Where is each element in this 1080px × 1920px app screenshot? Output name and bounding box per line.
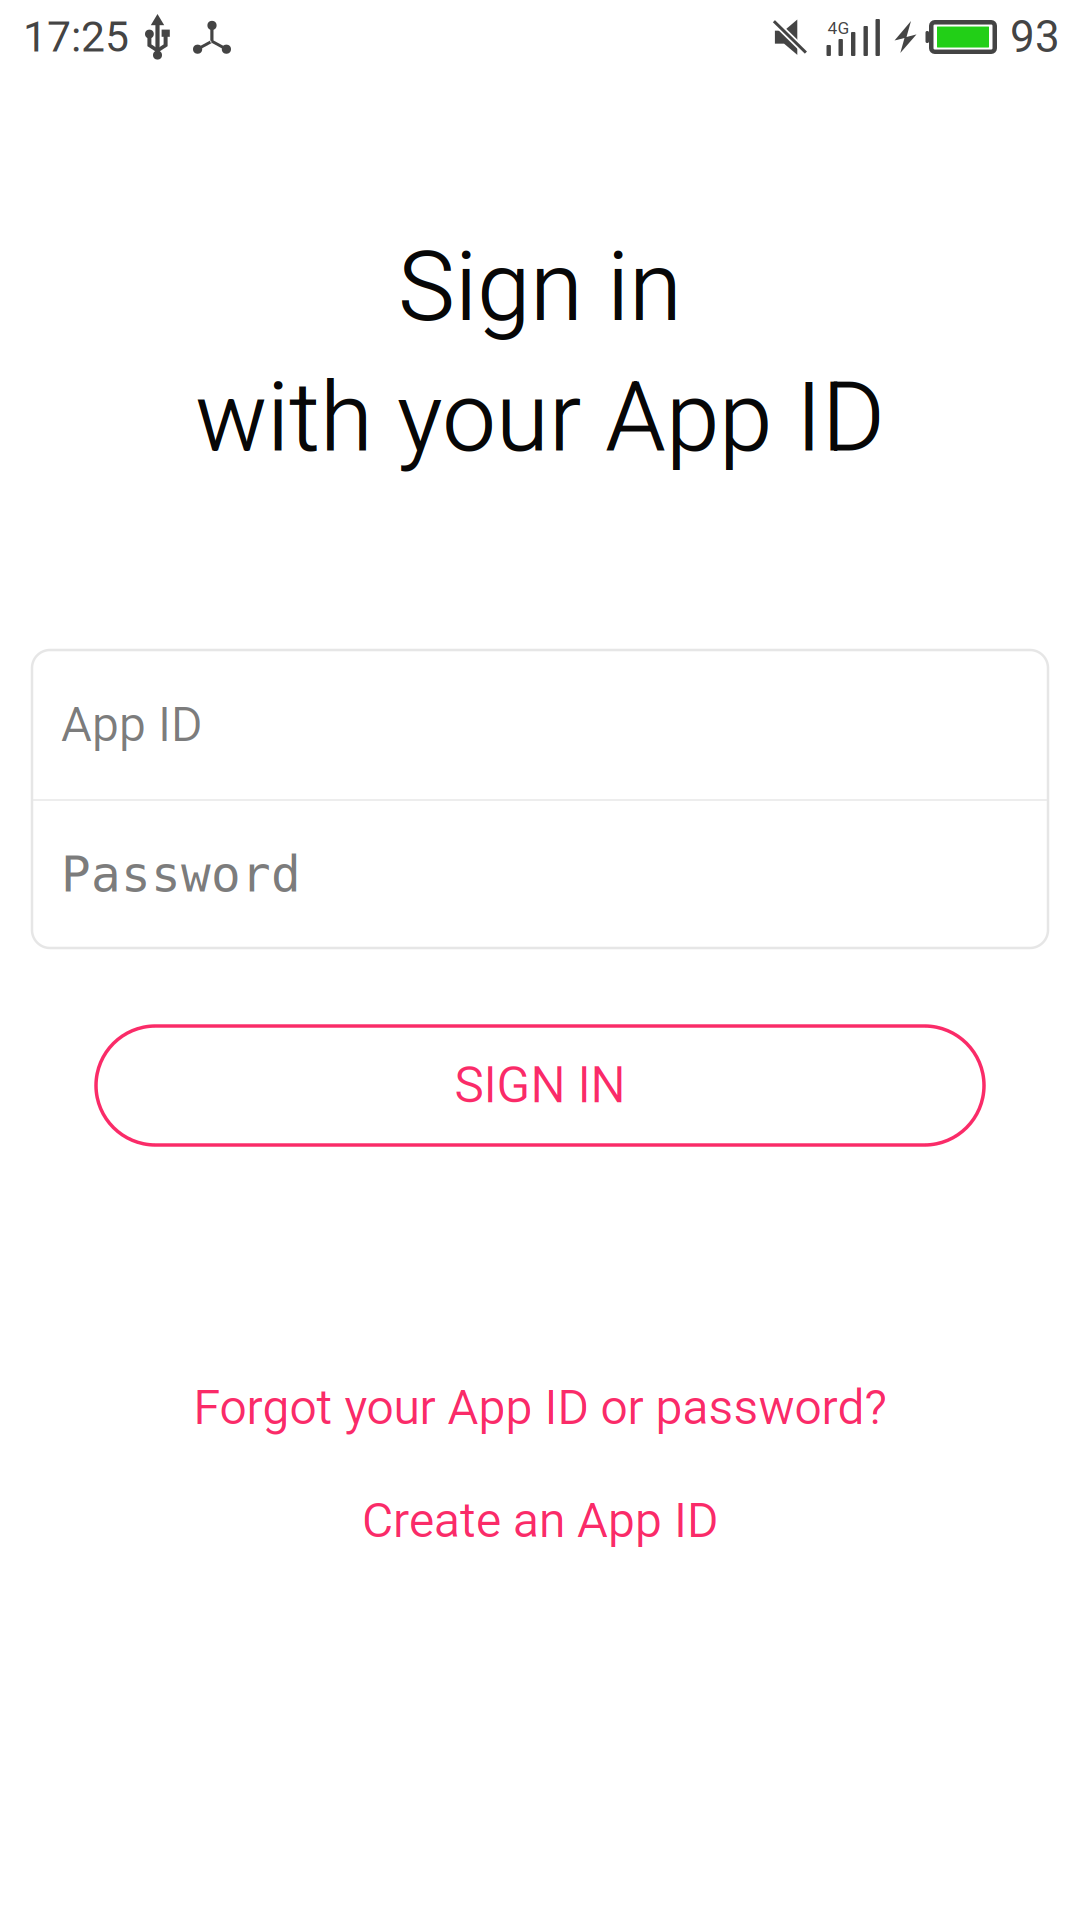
button[interactable]: Forgot your App ID or password? bbox=[180, 1351, 900, 1464]
staticText: Password bbox=[61, 846, 301, 903]
button[interactable]: App ID bbox=[32, 650, 1048, 799]
staticText: 17:25 bbox=[23, 12, 129, 62]
staticText: Sign in bbox=[398, 231, 682, 343]
staticText: App ID bbox=[61, 696, 202, 753]
staticText: 93 bbox=[1010, 11, 1060, 63]
button[interactable]: Password bbox=[32, 801, 1048, 948]
staticText: Create an App ID bbox=[362, 1492, 718, 1549]
staticText: 4G bbox=[827, 18, 849, 38]
button[interactable]: SIGN IN bbox=[96, 1026, 984, 1145]
staticText: SIGN IN bbox=[454, 1057, 625, 1114]
staticText: with your App ID bbox=[195, 361, 885, 474]
staticText: Forgot your App ID or password? bbox=[193, 1379, 886, 1436]
button[interactable]: Create an App ID bbox=[330, 1464, 750, 1577]
